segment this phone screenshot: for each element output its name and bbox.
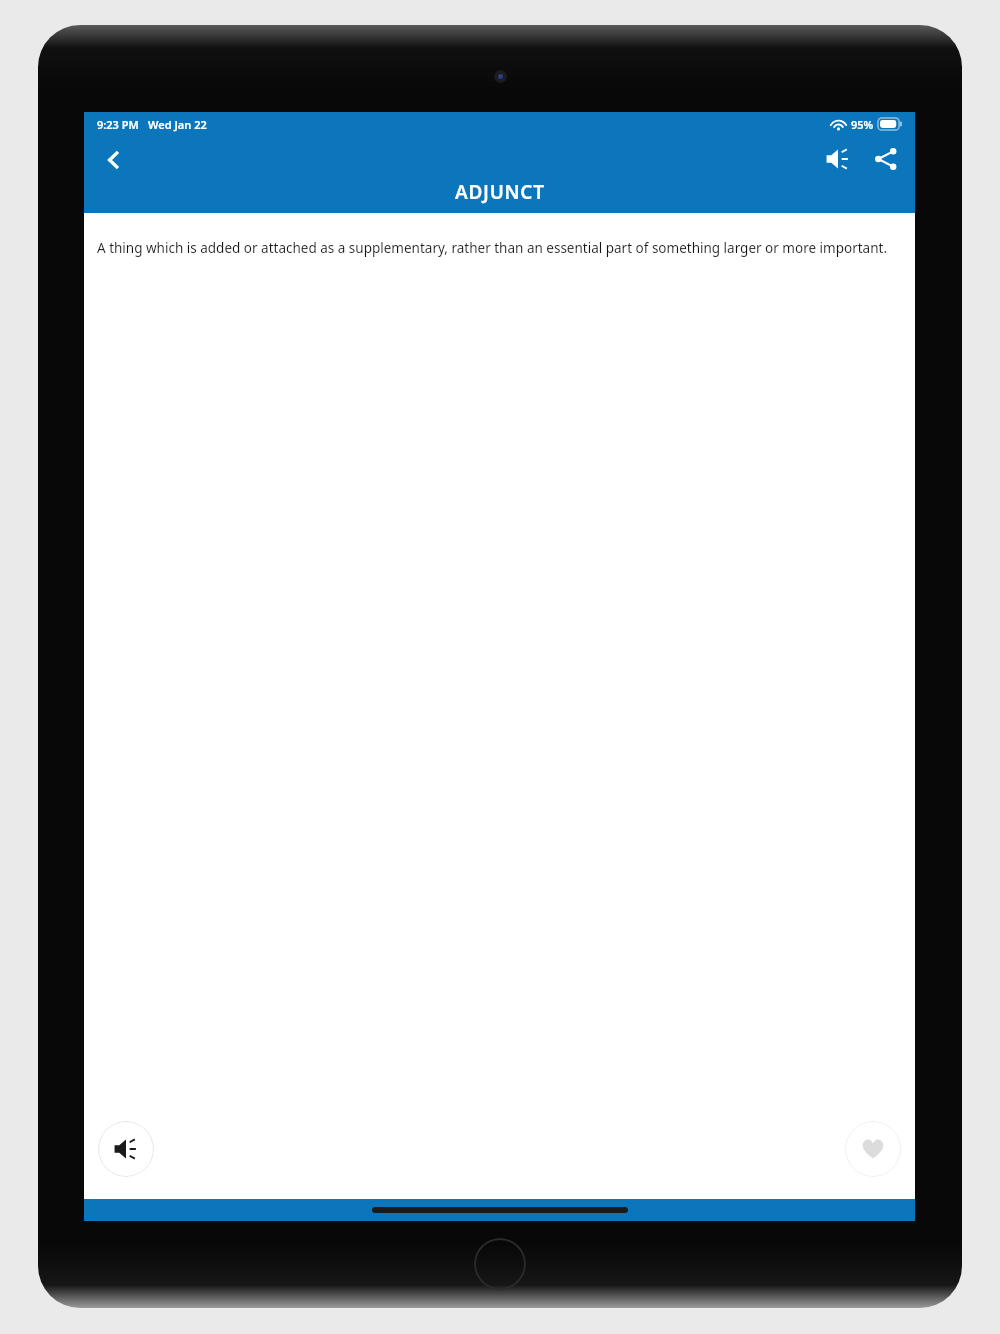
button[interactable]: Home [474,1238,526,1290]
staticText: A thing which is added or attached as a … [97,239,895,257]
button[interactable]: Back [92,138,136,182]
button[interactable]: Play pronunciation [98,1121,154,1177]
staticText: Wed Jan 22 [148,117,207,132]
button[interactable]: Pronounce [817,138,859,180]
staticText: 9:23 PM [97,117,139,132]
button[interactable]: Add to favourites [845,1121,901,1177]
staticText: 95% [851,117,874,132]
staticText: ADJUNCT [455,179,545,205]
button[interactable]: Share [865,138,907,180]
